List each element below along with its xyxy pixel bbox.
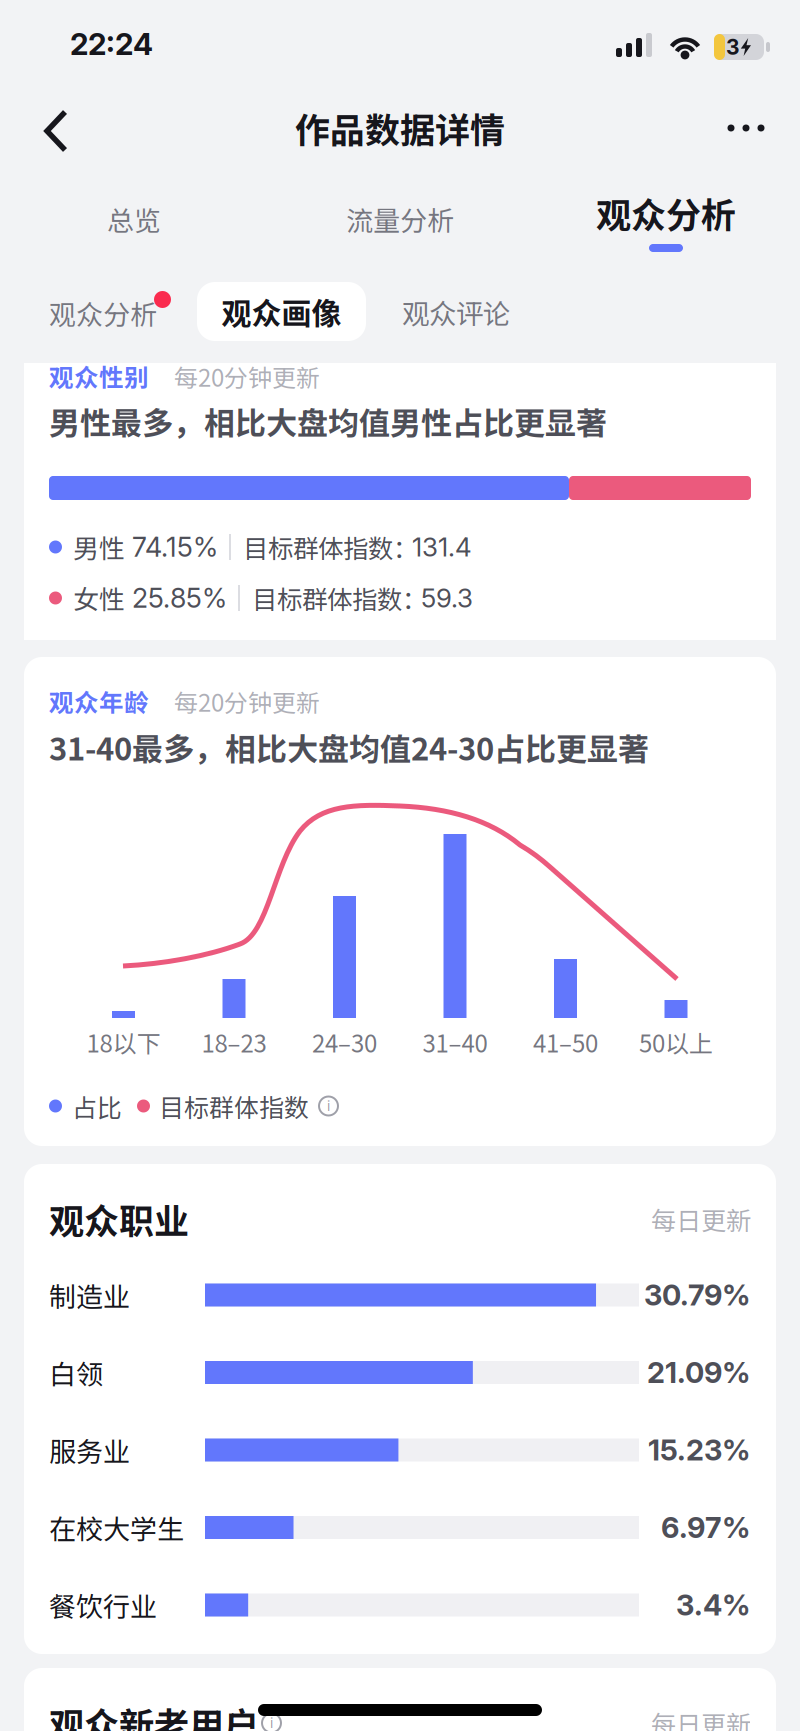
button[interactable]: 观众评论: [376, 282, 536, 342]
staticText: 观众职业: [49, 1194, 189, 1244]
staticText: 31–40: [422, 1025, 487, 1059]
staticText: 每20分钟更新: [174, 684, 320, 719]
button[interactable]: More options: [702, 92, 790, 164]
button[interactable]: 观众画像: [197, 282, 366, 341]
staticText: 观众分析: [596, 188, 736, 238]
staticText: 观众分析: [49, 293, 157, 333]
staticText: 在校大学生: [49, 1508, 184, 1547]
staticText: 每20分钟更新: [174, 359, 320, 394]
staticText: 50以上: [639, 1025, 713, 1059]
staticText: 24–30: [312, 1025, 377, 1059]
staticText: 59.3: [421, 582, 473, 614]
staticText: i: [327, 1098, 330, 1114]
staticText: 白领: [49, 1353, 103, 1392]
staticText: 25.85%: [132, 582, 227, 614]
staticText: 3.4%: [676, 1587, 750, 1623]
staticText: 74.15%: [132, 531, 218, 563]
staticText: 每日更新: [651, 1201, 751, 1237]
staticText: 制造业: [49, 1275, 130, 1315]
staticText: 31-40最多，相比大盘均值24-30占比更显著: [49, 725, 649, 769]
staticText: 15.23%: [648, 1432, 750, 1468]
staticText: 30.79%: [644, 1277, 750, 1313]
staticText: 男性: [73, 528, 125, 566]
staticText: 目标群体指数：: [252, 579, 427, 616]
staticText: 21.09%: [647, 1355, 750, 1390]
staticText: 服务业: [49, 1430, 130, 1470]
button[interactable]: 观众分析: [533, 183, 799, 255]
staticText: 22:24: [70, 26, 153, 62]
staticText: 131.4: [412, 531, 472, 563]
staticText: 观众性别: [49, 358, 149, 394]
button[interactable]: 观众分析: [23, 283, 183, 343]
staticText: 目标群体指数: [159, 1088, 309, 1124]
staticText: 总览: [107, 199, 161, 239]
button[interactable]: 总览: [1, 189, 267, 249]
staticText: 观众评论: [402, 292, 510, 332]
staticText: 18–23: [201, 1025, 266, 1059]
staticText: 41–50: [533, 1025, 598, 1059]
staticText: 女性: [73, 579, 125, 617]
staticText: 观众新老用户: [49, 1698, 259, 1731]
staticText: 18以下: [86, 1025, 160, 1059]
staticText: 占比: [72, 1088, 122, 1124]
staticText: 观众年龄: [49, 683, 149, 719]
staticText: 观众画像: [221, 290, 341, 333]
staticText: 男性最多，相比大盘均值男性占比更显著: [49, 399, 607, 443]
staticText: 餐饮行业: [49, 1585, 157, 1625]
staticText: 作品数据详情: [295, 103, 505, 153]
button[interactable]: Back: [20, 91, 92, 171]
staticText: 3: [726, 34, 740, 60]
staticText: 流量分析: [346, 199, 454, 239]
staticText: 6.97%: [661, 1510, 750, 1545]
button[interactable]: 流量分析: [267, 189, 533, 249]
staticText: 每日更新: [651, 1705, 751, 1731]
staticText: i: [270, 1715, 273, 1731]
staticText: 目标群体指数：: [243, 528, 418, 565]
